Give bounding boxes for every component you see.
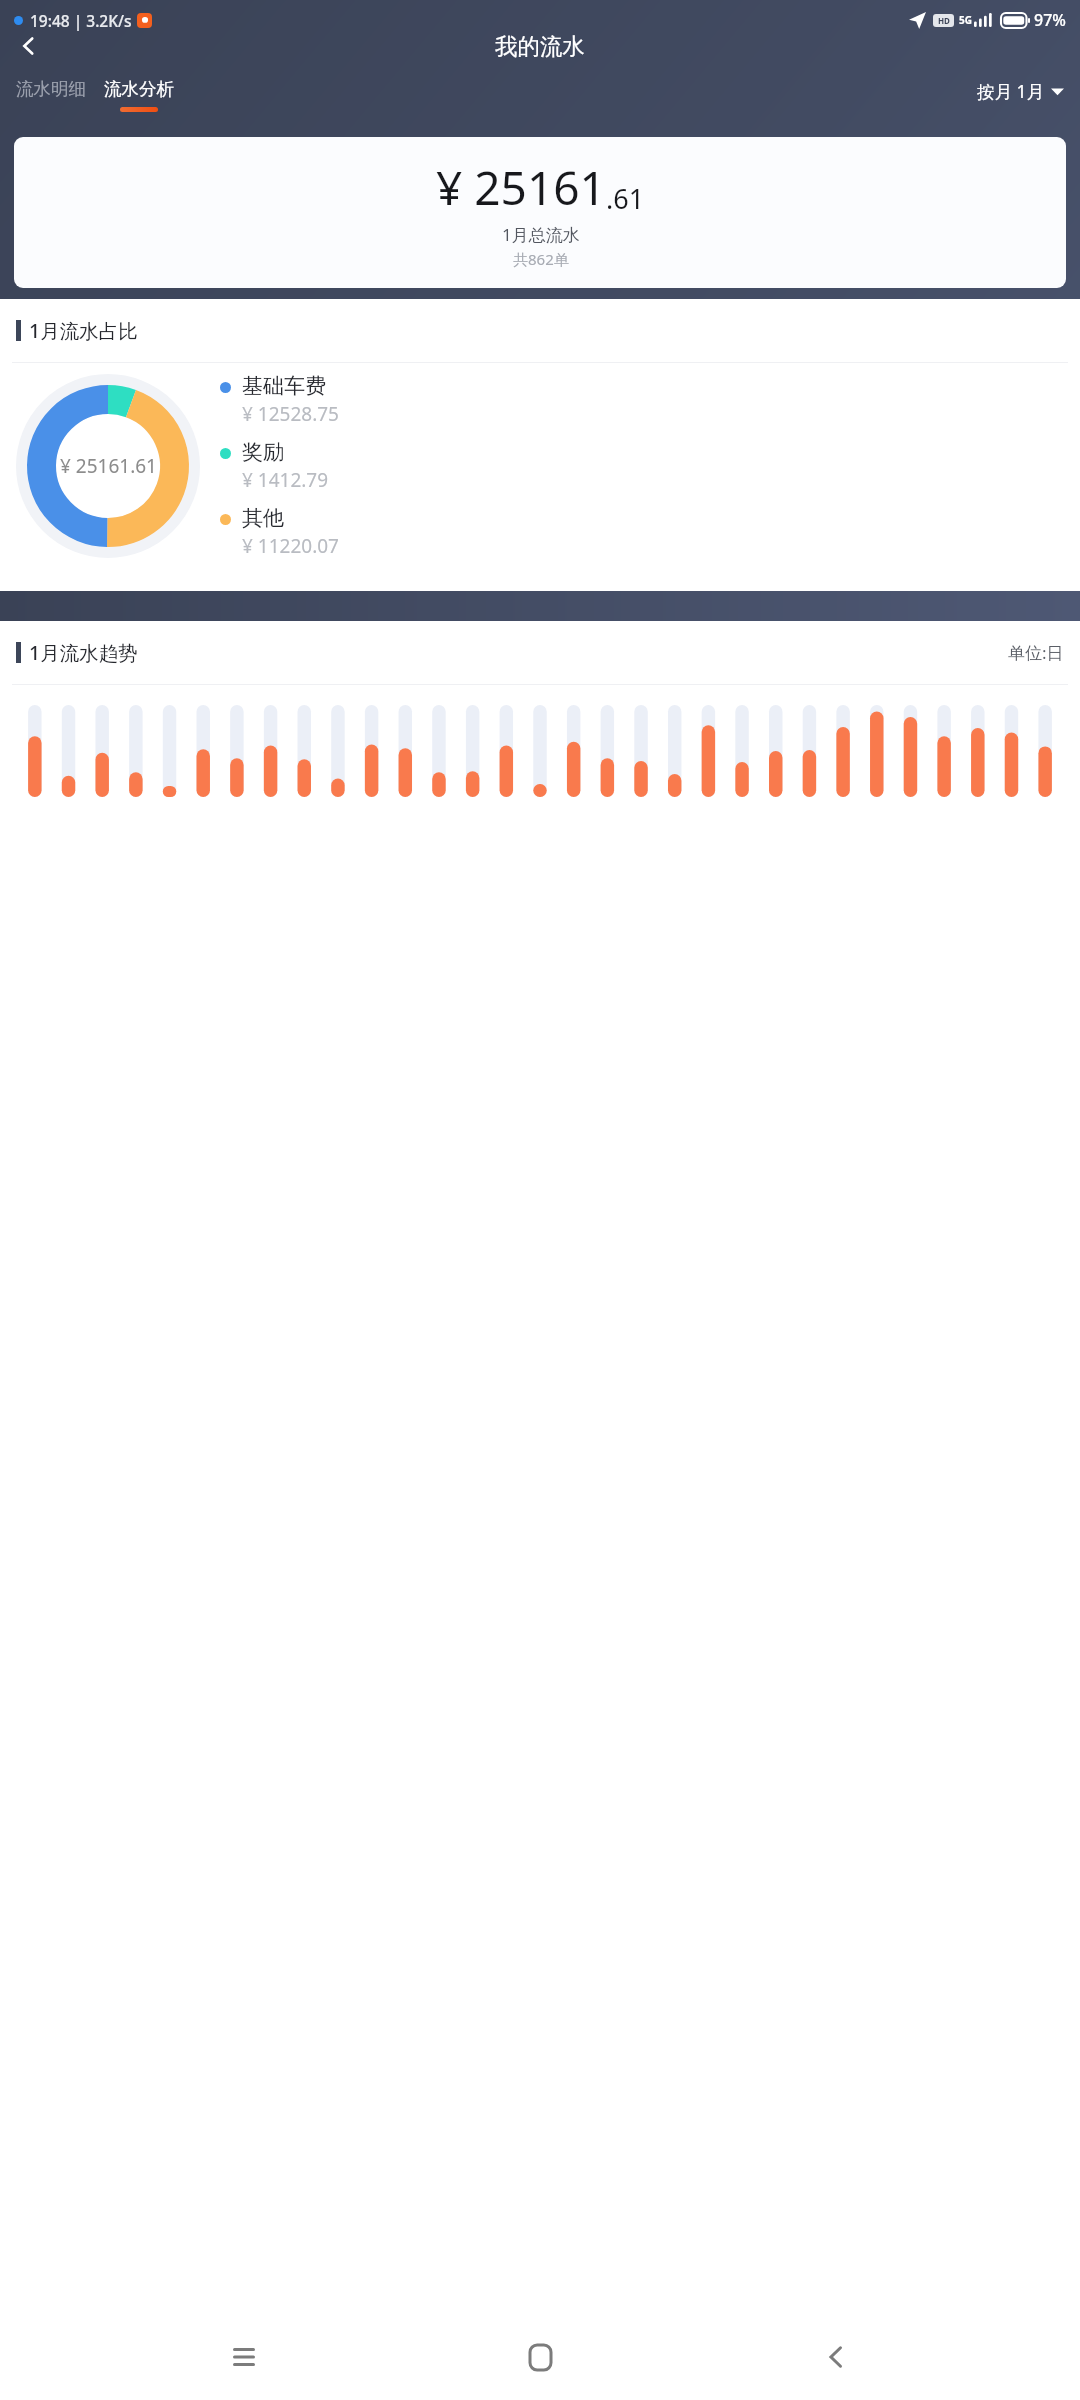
staticText: 奖励 bbox=[242, 439, 284, 465]
staticText: 1月流水占比 bbox=[29, 317, 138, 344]
button[interactable]: Recent apps bbox=[213, 2326, 275, 2388]
staticText: 5G bbox=[959, 13, 972, 27]
button[interactable]: Back bbox=[805, 2326, 867, 2388]
staticText: ¥ 12528.75 bbox=[242, 401, 339, 427]
staticText: ¥ 25161.61 bbox=[60, 453, 157, 479]
staticText: 流水明细 bbox=[16, 78, 86, 100]
staticText: 流水分析 bbox=[104, 78, 174, 100]
button[interactable]: Back bbox=[8, 26, 48, 66]
staticText: 单位:日 bbox=[1008, 641, 1064, 664]
button[interactable]: 其他 bbox=[220, 505, 339, 559]
staticText: 19:48 | 3.2K/s bbox=[30, 10, 132, 31]
staticText: 1月总流水 bbox=[502, 223, 580, 246]
button[interactable]: 流水明细 bbox=[16, 78, 86, 100]
staticText: .61 bbox=[606, 180, 645, 217]
staticText: 1月流水趋势 bbox=[29, 639, 138, 666]
staticText: ¥ 25161 bbox=[436, 156, 606, 219]
button[interactable]: ¥ 25161 bbox=[14, 137, 1066, 288]
staticText: ¥ 11220.07 bbox=[242, 533, 339, 559]
button[interactable]: 按月 1月 bbox=[977, 79, 1064, 103]
staticText: 我的流水 bbox=[495, 32, 585, 60]
staticText: HD bbox=[938, 15, 950, 26]
staticText: 其他 bbox=[242, 505, 284, 531]
staticText: 共862单 bbox=[513, 249, 569, 269]
staticText: 基础车费 bbox=[242, 373, 326, 399]
staticText: 97% bbox=[1034, 9, 1066, 31]
button[interactable]: 基础车费 bbox=[220, 373, 339, 427]
staticText: ¥ 1412.79 bbox=[242, 467, 329, 493]
button[interactable]: Home bbox=[509, 2326, 571, 2388]
staticText: 按月 1月 bbox=[977, 79, 1045, 103]
button[interactable]: 奖励 bbox=[220, 439, 329, 493]
button[interactable]: 流水分析 bbox=[104, 78, 174, 112]
